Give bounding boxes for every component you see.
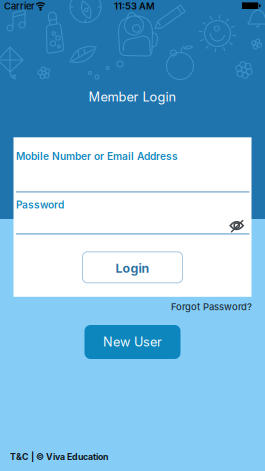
staticText: Member Login [88,89,176,104]
button[interactable]: Password [16,199,221,233]
button[interactable]: Show password [229,220,245,234]
staticText: Carrier [4,0,35,12]
button[interactable]: Mobile Number or Email Address [16,150,250,192]
staticText: Forgot Password? [171,301,252,312]
button[interactable]: Login [82,252,182,283]
staticText: Password [16,199,64,211]
button[interactable]: Forgot Password? [171,301,252,312]
button[interactable]: New User [84,325,180,359]
button[interactable]: T&C | © Viva Education [10,451,108,462]
staticText: T&C | © Viva Education [10,451,108,462]
staticText: Mobile Number or Email Address [16,150,178,163]
staticText: New User [103,334,162,350]
staticText: 11:53 AM [114,0,155,12]
staticText: Login [115,261,149,276]
